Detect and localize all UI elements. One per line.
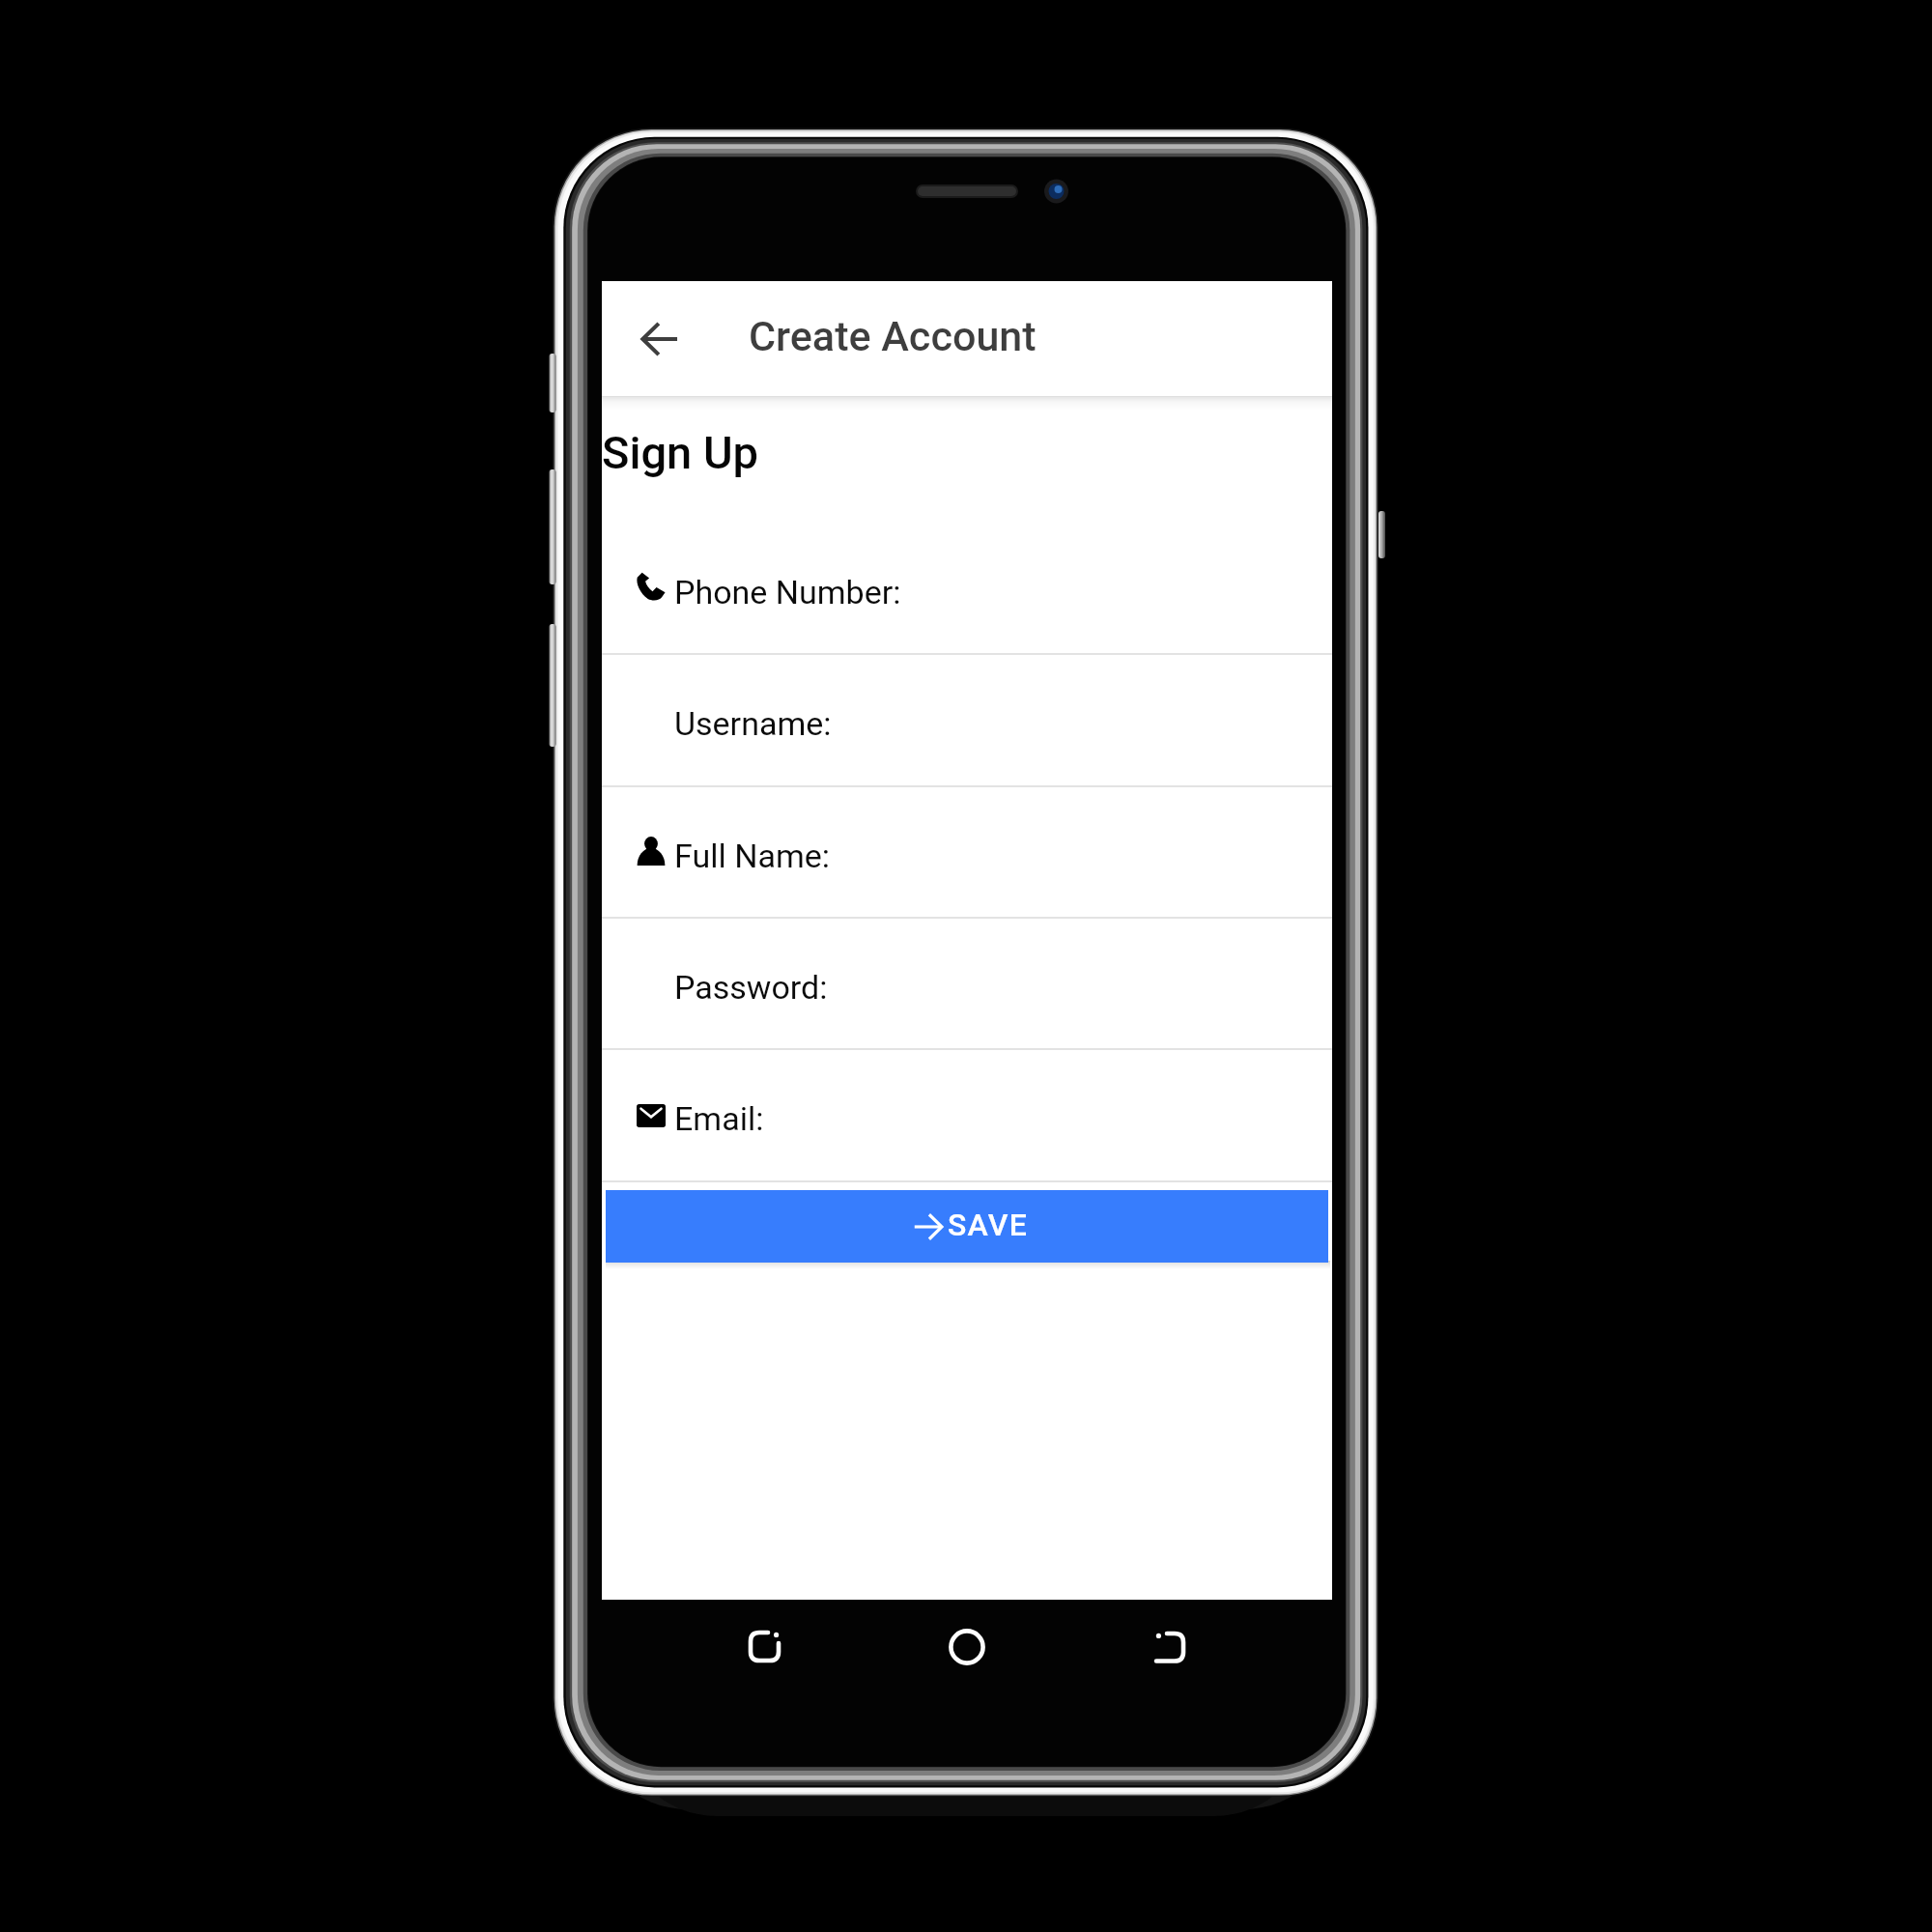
button[interactable]: Password: (602, 917, 1332, 1049)
staticText: Create Account (749, 312, 1037, 360)
button[interactable]: Username: (602, 653, 1332, 785)
staticText: Full Name: (674, 837, 830, 875)
staticText: Sign Up (602, 426, 759, 479)
button[interactable]: Email: (602, 1048, 1332, 1180)
button[interactable]: Phone Number: (602, 522, 1332, 654)
staticText: Phone Number: (674, 573, 901, 611)
staticText: SAVE (948, 1207, 1029, 1243)
button[interactable]: SAVE (606, 1190, 1328, 1263)
staticText: Username: (674, 704, 832, 743)
staticText: Email: (674, 1099, 764, 1138)
button[interactable]: Back (623, 302, 696, 376)
button[interactable]: Full Name: (602, 785, 1332, 918)
staticText: Password: (674, 968, 828, 1007)
